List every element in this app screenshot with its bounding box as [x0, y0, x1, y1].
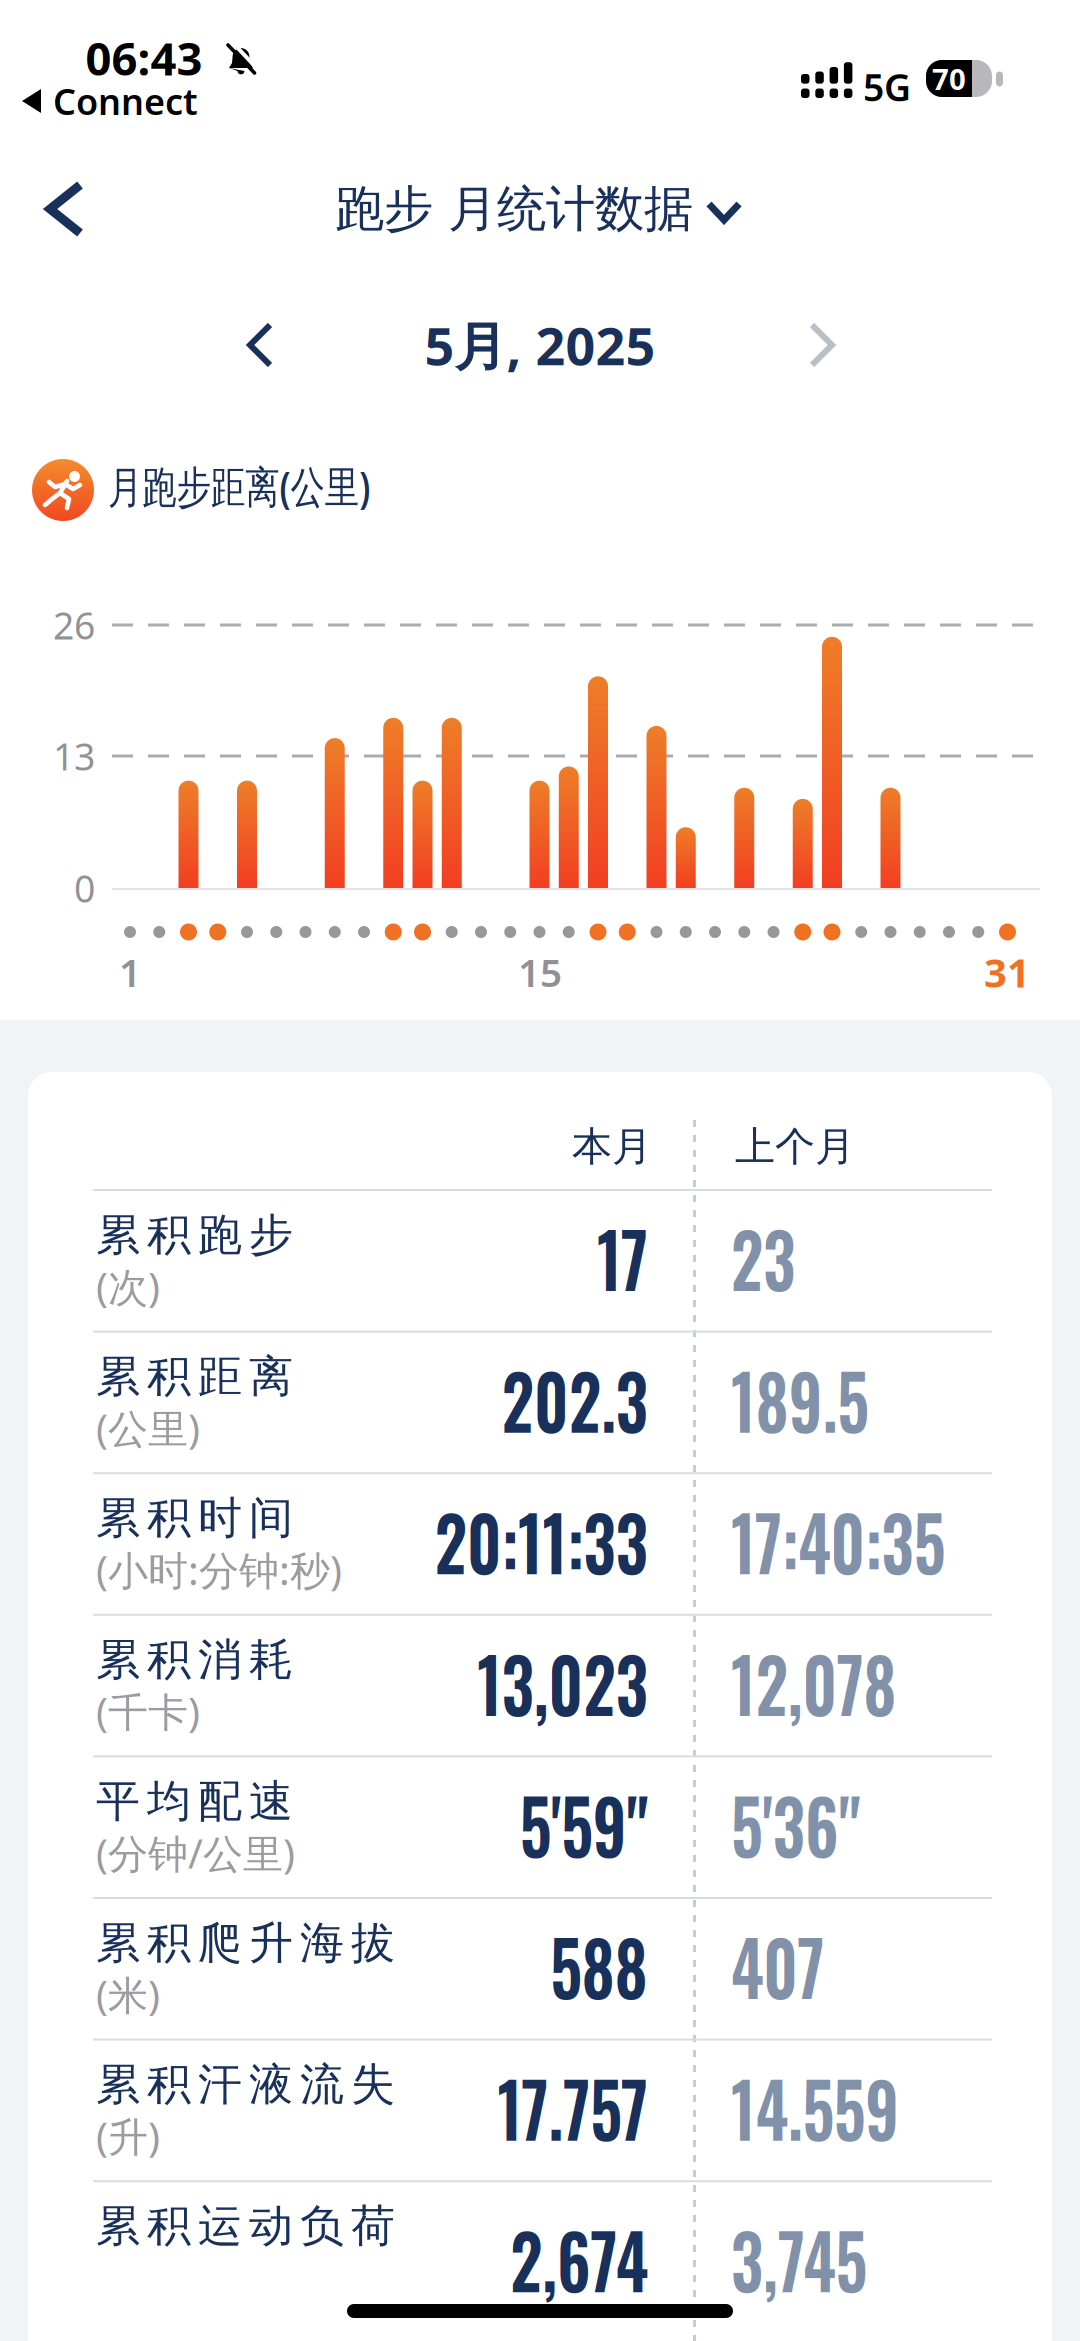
staticText: 累积跑步	[96, 1208, 293, 1262]
staticText: 累积汗液流失	[96, 2058, 395, 2112]
staticText: 5'36"	[731, 1768, 883, 1879]
staticText: 14.559	[731, 2052, 929, 2162]
staticText: 5G	[863, 62, 911, 112]
staticText: (次)	[96, 1260, 160, 1313]
staticText: 累积爬升海拔	[96, 1916, 395, 1970]
staticText: (公里)	[96, 1402, 200, 1455]
staticText: Connect	[53, 77, 198, 125]
staticText: 13,023	[447, 1627, 648, 1737]
button[interactable]: Back to Connect	[22, 77, 198, 125]
staticText: 1	[119, 946, 141, 998]
staticText: 17	[588, 1202, 648, 1313]
staticText: 0	[74, 863, 95, 913]
staticText: 588	[533, 1910, 648, 2021]
staticText: 本月	[572, 1122, 652, 1171]
staticText: 累积时间	[96, 1491, 293, 1545]
staticText: (米)	[96, 1968, 160, 2021]
staticText: 13	[53, 731, 95, 781]
staticText: 累积运动负荷	[96, 2199, 395, 2253]
staticText: 17.757	[471, 2052, 648, 2162]
staticText: 平均配速	[96, 1774, 293, 1828]
staticText: 06:43	[85, 28, 202, 88]
staticText: 23	[731, 1202, 807, 1313]
staticText: 3,745	[731, 2203, 891, 2314]
staticText: 2,674	[486, 2203, 648, 2314]
staticText: 189.5	[731, 1344, 893, 1454]
staticText: 累积消耗	[96, 1633, 293, 1687]
staticText: (小时:分钟:秒)	[96, 1543, 342, 1596]
staticText: 12,078	[731, 1627, 926, 1737]
staticText: 跑步 月统计数据	[335, 179, 693, 239]
button[interactable]: Next month	[800, 313, 844, 377]
button[interactable]: Back	[36, 171, 94, 247]
staticText: 31	[984, 945, 1030, 998]
staticText: 5月, 2025	[424, 310, 655, 380]
button[interactable]: Previous month	[238, 313, 282, 377]
button[interactable]: 跑步 月统计数据	[335, 179, 739, 239]
staticText: 20:11:33	[397, 1485, 648, 1596]
staticText: (升)	[96, 2110, 160, 2163]
staticText: 26	[53, 600, 95, 650]
staticText: 月跑步距离(公里)	[108, 457, 444, 515]
staticText: 5'59"	[497, 1768, 648, 1879]
staticText: (分钟/公里)	[96, 1826, 295, 1879]
staticText: 202.3	[476, 1344, 648, 1454]
staticText: 累积距离	[96, 1350, 293, 1404]
staticText: 17:40:35	[731, 1485, 983, 1596]
staticText: 407	[731, 1910, 841, 2021]
staticText: 上个月	[735, 1122, 855, 1171]
staticText: 15	[518, 946, 562, 998]
staticText: 70	[932, 59, 966, 98]
staticText: (千卡)	[96, 1685, 200, 1738]
